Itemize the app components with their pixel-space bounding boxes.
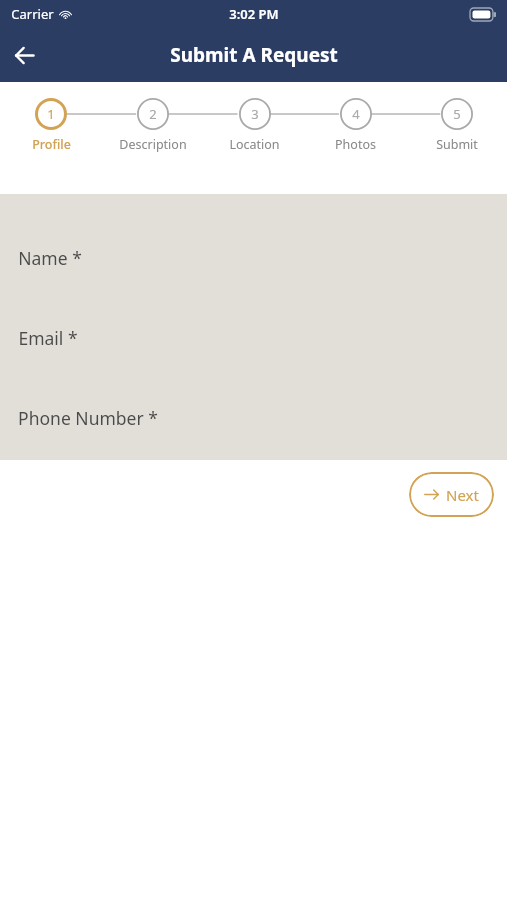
staticText: Profile — [32, 136, 71, 153]
staticText: 4 — [352, 105, 360, 123]
staticText: Phone Number * — [18, 406, 158, 426]
staticText: 2 — [149, 105, 157, 123]
staticText: 1 — [47, 105, 55, 123]
button[interactable]: Phone Number * — [0, 406, 507, 426]
button[interactable]: 3 — [204, 90, 305, 153]
staticText: Email * — [18, 326, 78, 346]
button[interactable]: Back — [0, 31, 48, 79]
staticText: Description — [119, 136, 187, 153]
staticText: 3:02 PM — [229, 5, 279, 23]
staticText: Name * — [18, 246, 82, 266]
staticText: 5 — [453, 105, 461, 123]
button[interactable]: 2 — [102, 90, 204, 153]
button[interactable]: 5 — [406, 90, 507, 153]
button[interactable]: Next — [409, 472, 494, 517]
button[interactable]: 4 — [305, 90, 406, 153]
staticText: Carrier — [11, 5, 54, 23]
staticText: Next — [446, 485, 479, 505]
staticText: Photos — [335, 136, 376, 153]
staticText: Location — [229, 136, 280, 153]
button[interactable]: Name * — [0, 246, 507, 266]
staticText: Submit — [436, 136, 478, 153]
staticText: 3 — [251, 105, 259, 123]
button[interactable]: Email * — [0, 326, 507, 346]
staticText: Submit A Request — [170, 42, 338, 68]
button[interactable]: 1 — [0, 90, 102, 153]
